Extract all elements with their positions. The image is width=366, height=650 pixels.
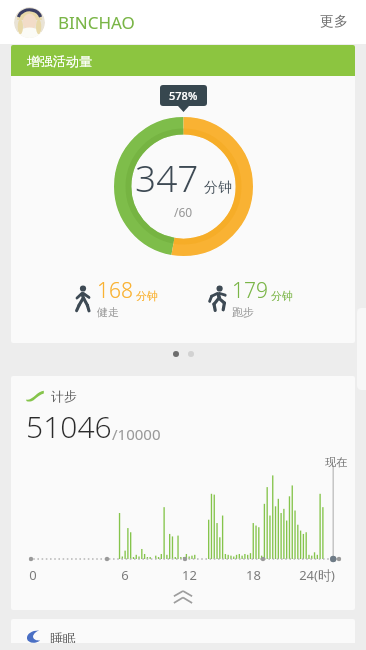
staticText: /10000 — [112, 424, 161, 444]
staticText: 347 — [135, 152, 199, 202]
staticText: 现在 — [325, 455, 347, 469]
staticText: 睡眠 — [50, 630, 76, 643]
button[interactable]: Profile photo — [14, 7, 45, 38]
staticText: 168 — [97, 276, 133, 305]
staticText: /60 — [174, 204, 193, 220]
staticText: 6 — [121, 566, 129, 584]
button[interactable]: 增强活动量 — [11, 45, 355, 343]
button[interactable]: Expand — [11, 584, 355, 610]
staticText: 18 — [246, 566, 261, 584]
staticText: BINCHAO — [58, 11, 135, 34]
staticText: 分钟 — [204, 179, 232, 197]
button[interactable]: 更多 — [316, 9, 352, 35]
staticText: 更多 — [320, 13, 348, 31]
button[interactable]: Walking — [71, 274, 160, 321]
staticText: 0 — [29, 566, 37, 584]
staticText: 分钟 — [271, 289, 293, 303]
other: Running — [208, 284, 228, 312]
staticText: 跑步 — [232, 305, 254, 319]
staticText: 24(时) — [299, 566, 335, 584]
staticText: 51046 — [26, 406, 112, 447]
button[interactable]: 睡眠 — [11, 619, 355, 643]
staticText: 增强活动量 — [27, 53, 92, 69]
staticText: 分钟 — [136, 289, 158, 303]
button[interactable]: Running — [206, 274, 295, 321]
staticText: 计步 — [51, 388, 77, 404]
staticText: 179 — [232, 276, 268, 305]
other: Walking — [73, 284, 93, 312]
staticText: 健走 — [97, 305, 119, 319]
staticText: 578% — [169, 88, 198, 103]
staticText: 12 — [182, 566, 197, 584]
button[interactable]: 计步 — [11, 376, 355, 610]
